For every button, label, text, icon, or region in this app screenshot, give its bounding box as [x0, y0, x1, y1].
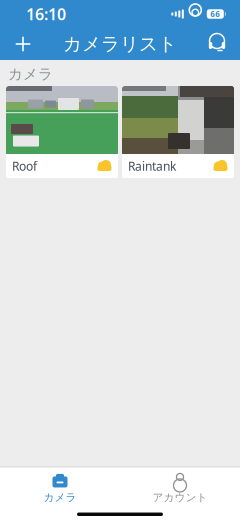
staticText: カメラリスト	[63, 32, 177, 55]
button[interactable]: Roof	[6, 86, 118, 178]
button[interactable]: カメラを追加	[6, 28, 40, 60]
staticText: 16:10	[26, 3, 66, 25]
button[interactable]: カメラ	[0, 467, 120, 504]
staticText: 66	[210, 9, 220, 19]
staticText: カメラ	[8, 65, 53, 83]
staticText: Raintank	[128, 158, 176, 174]
button[interactable]: Raintank	[122, 86, 234, 178]
staticText: Roof	[12, 158, 37, 174]
staticText: アカウント	[152, 491, 207, 504]
button[interactable]: アカウント	[120, 467, 240, 504]
button[interactable]: サポート	[200, 28, 234, 60]
staticText: カメラ	[43, 491, 76, 504]
